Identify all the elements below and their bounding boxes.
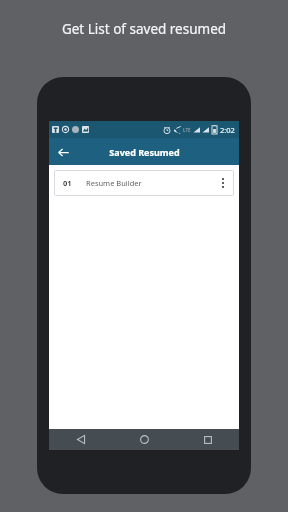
button[interactable]: Back [53,142,73,162]
button[interactable]: Recent apps [176,429,239,450]
button[interactable]: 01 [54,170,234,196]
staticText: 2:02 [220,125,235,135]
button[interactable]: Back [49,429,113,450]
staticText: Resume Builder [86,178,142,188]
staticText: LTE [183,127,191,133]
button[interactable]: More options [212,170,234,196]
staticText: 01 [63,178,72,188]
button[interactable]: Home [113,429,176,450]
staticText: Get List of saved resumed [0,20,288,38]
staticText: Saved Resumed [109,146,180,158]
